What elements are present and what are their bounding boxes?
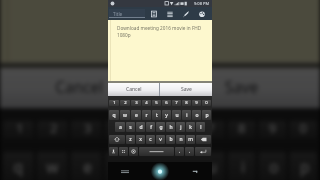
button[interactable]: Save	[160, 68, 320, 108]
button[interactable]: t	[152, 110, 161, 120]
button[interactable]: e	[131, 110, 141, 120]
button[interactable]: u	[197, 152, 225, 180]
staticText: 1	[15, 121, 24, 139]
button[interactable]: Comma	[175, 147, 184, 156]
staticText: 7	[175, 100, 178, 106]
button[interactable]: 3	[71, 121, 101, 139]
button[interactable]: b	[166, 135, 175, 144]
button[interactable]: Menu	[108, 162, 142, 180]
button[interactable]: Home	[142, 162, 177, 180]
button[interactable]: d	[136, 122, 145, 132]
button[interactable]: x	[136, 135, 145, 144]
button[interactable]: 9	[259, 121, 286, 139]
staticText: Download meeting 2016 movie in FHD	[117, 25, 202, 31]
staticText: e	[83, 158, 92, 179]
button[interactable]: j	[176, 122, 185, 132]
button[interactable]: 2	[120, 100, 130, 106]
button[interactable]: e	[71, 152, 101, 180]
button[interactable]: 9	[192, 100, 201, 106]
staticText: 2	[124, 100, 127, 106]
button[interactable]: 2	[37, 121, 68, 139]
button[interactable]: Space	[139, 147, 174, 156]
button[interactable]: v	[156, 135, 165, 144]
button[interactable]: 3	[131, 100, 141, 106]
button[interactable]: w	[37, 152, 68, 180]
button[interactable]: p	[289, 152, 317, 180]
staticText: 1080p	[117, 32, 131, 38]
button[interactable]: Download meeting 2016 movie in FHD	[0, 0, 320, 68]
button[interactable]: o	[259, 152, 286, 180]
button[interactable]: y	[166, 152, 194, 180]
button[interactable]: r	[105, 152, 132, 180]
button[interactable]: 0	[289, 121, 317, 139]
button[interactable]: 4	[105, 121, 132, 139]
button[interactable]: n	[176, 135, 185, 144]
button[interactable]: y	[162, 110, 171, 120]
button[interactable]: 6	[162, 100, 171, 106]
staticText: 9	[195, 100, 198, 106]
button[interactable]: 8	[182, 100, 191, 106]
button[interactable]: Title	[109, 9, 145, 18]
staticText: Save	[181, 86, 192, 93]
button[interactable]: q	[109, 110, 119, 120]
button[interactable]: Backspace	[196, 135, 211, 144]
button[interactable]: t	[135, 152, 163, 180]
button[interactable]: 1	[109, 100, 119, 106]
staticText: 8	[237, 121, 246, 139]
button[interactable]: 5	[152, 100, 161, 106]
button[interactable]: Shift	[109, 135, 125, 144]
button[interactable]: g	[156, 122, 165, 132]
staticText: c	[149, 136, 152, 143]
staticText: o	[195, 112, 199, 119]
button[interactable]: Enter	[195, 147, 211, 156]
staticText: 3	[83, 121, 92, 139]
button[interactable]: 7	[172, 100, 181, 106]
button[interactable]: Checklist	[146, 7, 162, 20]
button[interactable]: k	[186, 122, 195, 132]
button[interactable]: l	[196, 122, 205, 132]
button[interactable]: s	[126, 122, 135, 132]
button[interactable]: 4	[142, 100, 151, 106]
button[interactable]: a	[115, 122, 125, 132]
staticText: r	[114, 158, 123, 179]
button[interactable]: Attach	[178, 7, 194, 20]
button[interactable]: r	[142, 110, 151, 120]
button[interactable]: Period	[185, 147, 194, 156]
button[interactable]: w	[120, 110, 130, 120]
button[interactable]: u	[172, 110, 181, 120]
button[interactable]: c	[146, 135, 155, 144]
button[interactable]: 6	[166, 121, 194, 139]
staticText: 5	[145, 121, 154, 139]
button[interactable]: Colour	[194, 7, 210, 20]
staticText: p	[299, 158, 311, 179]
button[interactable]: p	[202, 110, 211, 120]
button[interactable]: Voice input	[109, 147, 118, 156]
button[interactable]: Cancel	[108, 83, 159, 96]
button[interactable]: Back	[177, 162, 212, 180]
staticText: q	[12, 158, 24, 179]
button[interactable]: f	[146, 122, 155, 132]
button[interactable]: Download meeting 2016 movie in FHD	[108, 20, 212, 83]
button[interactable]: 0	[202, 100, 211, 106]
button[interactable]: Cancel	[0, 68, 157, 108]
button[interactable]: z	[126, 135, 135, 144]
button[interactable]: q	[3, 152, 34, 180]
button[interactable]: 1	[3, 121, 34, 139]
button[interactable]: 8	[228, 121, 255, 139]
button[interactable]: Symbols	[119, 147, 128, 156]
button[interactable]: i	[182, 110, 191, 120]
button[interactable]: m	[186, 135, 195, 144]
button[interactable]: 7	[197, 121, 225, 139]
button[interactable]: Save	[160, 83, 212, 96]
button[interactable]: Settings	[129, 147, 138, 156]
staticText: y	[175, 158, 185, 179]
button[interactable]: i	[228, 152, 255, 180]
staticText: 7	[206, 121, 215, 139]
button[interactable]: 5	[135, 121, 163, 139]
staticText: 6	[165, 100, 168, 106]
staticText: n	[179, 136, 183, 143]
button[interactable]: List	[162, 7, 178, 20]
button[interactable]: h	[166, 122, 175, 132]
button[interactable]: o	[192, 110, 201, 120]
staticText: s	[129, 124, 132, 131]
